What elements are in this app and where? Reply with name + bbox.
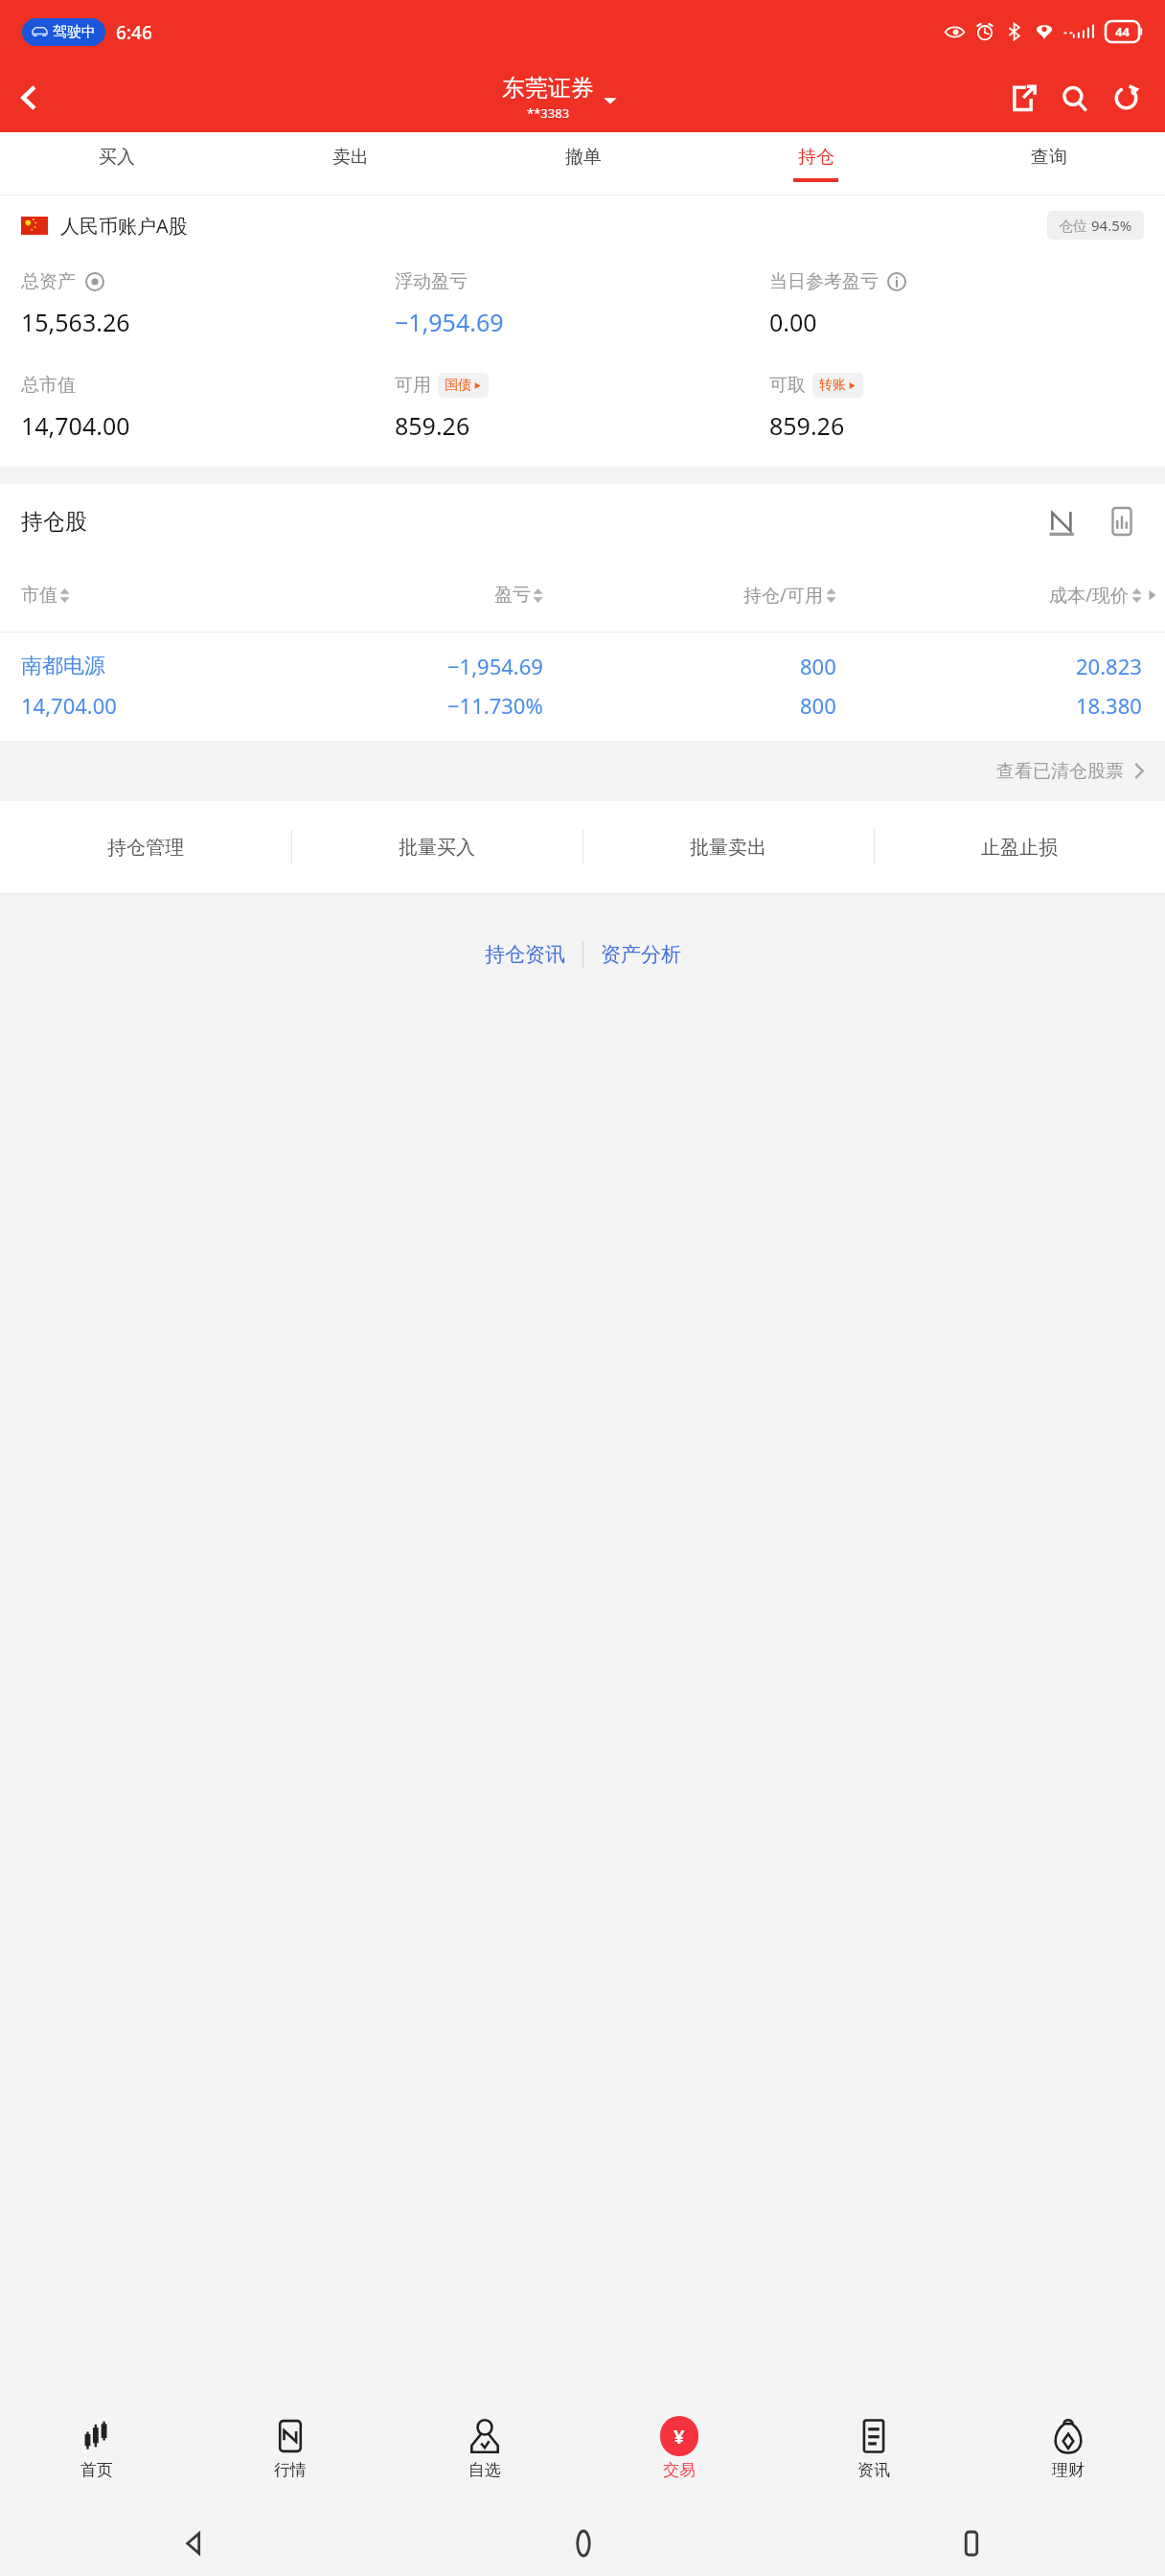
- staticText: 859.26: [769, 409, 845, 442]
- staticText: 批量卖出: [690, 836, 766, 860]
- staticText: 买入: [99, 146, 135, 169]
- staticText: 持仓: [798, 146, 834, 169]
- staticText: 持仓股: [21, 508, 87, 536]
- button[interactable]: 持仓管理: [0, 801, 291, 893]
- staticText: 18.380: [1076, 691, 1142, 720]
- button[interactable]: Back: [171, 2520, 217, 2566]
- staticText: 人民币账户A股: [60, 213, 188, 239]
- button[interactable]: Recents: [948, 2520, 994, 2566]
- button[interactable]: Back: [0, 69, 57, 126]
- staticText: 查看已清仓股票: [996, 760, 1124, 783]
- staticText: −1,954.69: [447, 652, 543, 680]
- staticText: 东莞证券: [502, 74, 594, 103]
- staticText: 成本/现价: [1049, 583, 1130, 608]
- button[interactable]: 人民币账户A股: [21, 195, 1144, 255]
- staticText: 总资产: [21, 270, 76, 293]
- staticText: 自选: [468, 2460, 501, 2480]
- button[interactable]: 理财: [971, 2385, 1165, 2510]
- button[interactable]: 撤单: [467, 132, 699, 195]
- button[interactable]: 转账: [812, 373, 863, 398]
- staticText: 查询: [1031, 146, 1067, 169]
- button[interactable]: 买入: [0, 132, 234, 195]
- button[interactable]: 查看已清仓股票: [0, 741, 1165, 801]
- staticText: **3383: [527, 104, 570, 122]
- button[interactable]: 资产分析: [583, 932, 698, 977]
- button[interactable]: Info: [885, 270, 908, 293]
- button[interactable]: ¥: [582, 2385, 776, 2510]
- staticText: 首页: [80, 2460, 113, 2480]
- staticText: 800: [800, 691, 836, 720]
- staticText: −11.730%: [447, 691, 543, 720]
- staticText: 0.00: [769, 306, 817, 338]
- staticText: 14,704.00: [21, 691, 117, 720]
- button[interactable]: 国债: [438, 373, 489, 398]
- button[interactable]: 资讯: [776, 2385, 971, 2510]
- button[interactable]: Refresh: [1100, 72, 1152, 124]
- button[interactable]: 卖出: [234, 132, 467, 195]
- staticText: 国债: [445, 377, 471, 394]
- staticText: 持仓管理: [107, 836, 184, 860]
- staticText: 卖出: [332, 146, 369, 169]
- staticText: 15,563.26: [21, 306, 130, 338]
- staticText: 持仓/可用: [743, 583, 824, 608]
- staticText: 止盈止损: [981, 836, 1058, 860]
- staticText: 800: [800, 652, 836, 680]
- staticText: 仓位: [1059, 216, 1091, 235]
- button[interactable]: 批量买入: [291, 801, 582, 893]
- button[interactable]: 首页: [0, 2385, 194, 2510]
- staticText: 理财: [1052, 2460, 1085, 2480]
- staticText: 市值: [21, 584, 57, 607]
- button[interactable]: 查询: [932, 132, 1165, 195]
- button[interactable]: Search: [1048, 72, 1100, 124]
- staticText: 批量买入: [399, 836, 475, 860]
- staticText: 14,704.00: [21, 409, 130, 442]
- staticText: 驾驶中: [53, 23, 96, 41]
- staticText: 盈亏: [494, 584, 531, 607]
- button[interactable]: 持仓资讯: [468, 932, 582, 977]
- staticText: 859.26: [395, 409, 470, 442]
- button[interactable]: Share: [996, 72, 1048, 124]
- staticText: 持仓资讯: [485, 942, 565, 967]
- staticText: 撤单: [565, 146, 602, 169]
- staticText: 44: [1115, 23, 1130, 40]
- button[interactable]: Toggle visibility: [83, 270, 106, 293]
- staticText: 6:46: [116, 20, 152, 45]
- button[interactable]: Bar chart: [1100, 499, 1144, 543]
- staticText: 资讯: [857, 2460, 890, 2480]
- button[interactable]: 自选: [387, 2385, 582, 2510]
- staticText: 行情: [274, 2460, 307, 2480]
- staticText: 转账: [819, 377, 846, 394]
- staticText: 可取: [769, 374, 806, 397]
- button[interactable]: Line chart: [1040, 499, 1085, 543]
- button[interactable]: Home: [560, 2520, 606, 2566]
- button[interactable]: 止盈止损: [874, 801, 1165, 893]
- staticText: −1,954.69: [395, 306, 504, 338]
- staticText: 南都电源: [21, 653, 105, 679]
- staticText: 可用: [395, 374, 431, 397]
- button[interactable]: 持仓: [699, 132, 932, 195]
- staticText: 总市值: [21, 374, 76, 397]
- staticText: 当日参考盈亏: [769, 270, 879, 293]
- staticText: 交易: [663, 2460, 696, 2480]
- button[interactable]: 行情: [194, 2385, 387, 2510]
- staticText: 浮动盈亏: [395, 270, 468, 293]
- staticText: ¥: [674, 2424, 685, 2449]
- staticText: 资产分析: [601, 942, 681, 967]
- button[interactable]: 南都电源: [0, 632, 1165, 741]
- staticText: 20.823: [1076, 652, 1142, 680]
- staticText: 94.5%: [1091, 216, 1132, 235]
- button[interactable]: 批量卖出: [582, 801, 874, 893]
